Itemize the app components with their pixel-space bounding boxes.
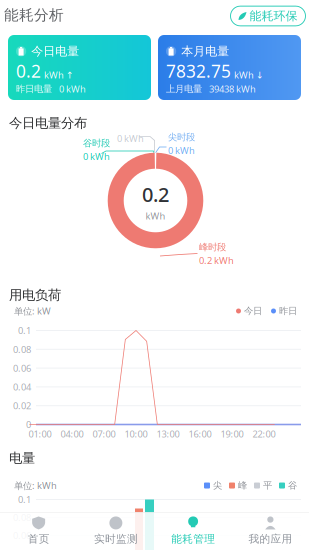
staticText: 谷	[288, 480, 297, 491]
staticText: 7832.75	[166, 59, 231, 82]
staticText: 16:00	[188, 428, 211, 440]
staticText: 07:00	[92, 428, 115, 440]
staticText: 昨日电量	[16, 83, 52, 95]
staticText: 实时监测	[94, 532, 138, 545]
button[interactable]: 首页	[0, 512, 77, 550]
staticText: 0 kWh	[117, 132, 144, 145]
staticText: 13:00	[156, 428, 179, 440]
staticText: 0.1	[18, 324, 31, 337]
staticText: 单位: kWh	[14, 479, 57, 492]
button[interactable]: 能耗环保	[230, 6, 305, 26]
staticText: 0.1	[18, 493, 31, 506]
staticText: 0.06	[13, 362, 31, 374]
staticText: 0.08	[13, 343, 31, 355]
staticText: 尖时段	[168, 131, 195, 143]
staticText: 用电负荷	[9, 287, 61, 303]
staticText: 0.02	[13, 399, 31, 412]
staticText: 0 kWh	[168, 144, 195, 157]
staticText: 10:00	[124, 428, 147, 440]
staticText: 04:00	[60, 428, 83, 440]
staticText: 能耗环保	[249, 9, 297, 23]
staticText: kWh ↓	[234, 69, 264, 81]
staticText: 19:00	[220, 428, 243, 440]
staticText: 电量	[9, 450, 35, 466]
button[interactable]: 实时监测	[77, 512, 154, 550]
staticText: 我的应用	[248, 532, 292, 545]
staticText: 首页	[28, 532, 50, 545]
staticText: 谷时段	[83, 137, 110, 149]
staticText: 0 kWh	[59, 83, 86, 95]
staticText: 单位: kW	[14, 305, 51, 317]
staticText: 0 kWh	[83, 150, 110, 163]
staticText: 上月电量	[166, 83, 202, 95]
staticText: 今日电量	[31, 44, 79, 59]
staticText: 22:00	[252, 428, 275, 440]
staticText: 0.2	[142, 181, 169, 208]
staticText: 本月电量	[181, 44, 229, 59]
staticText: 尖	[213, 480, 222, 491]
staticText: 01:00	[28, 428, 51, 440]
staticText: kWh ↑	[44, 69, 74, 81]
staticText: 0.2 kWh	[199, 254, 234, 267]
staticText: 0	[26, 418, 31, 431]
staticText: 峰	[238, 480, 247, 491]
staticText: 平	[263, 480, 272, 491]
staticText: 能耗分析	[4, 6, 64, 24]
staticText: 能耗管理	[171, 532, 215, 545]
staticText: 昨日	[279, 305, 297, 317]
staticText: 今日	[244, 305, 262, 317]
staticText: kWh	[145, 210, 165, 222]
button[interactable]: 能耗管理	[154, 512, 232, 550]
button[interactable]: 我的应用	[232, 512, 309, 550]
staticText: 39438 kWh	[209, 83, 256, 95]
staticText: 0.08	[13, 511, 31, 524]
staticText: 今日电量分布	[9, 115, 87, 131]
staticText: 0.06	[13, 529, 31, 541]
staticText: 峰时段	[199, 241, 226, 253]
staticText: 0.2	[16, 59, 41, 82]
staticText: 0.04	[13, 381, 31, 393]
